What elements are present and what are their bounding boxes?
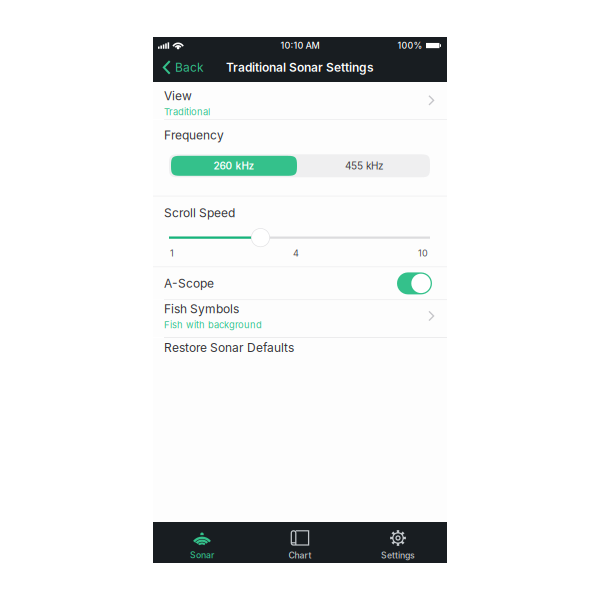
button[interactable]: View	[153, 82, 447, 119]
staticText: Fish with background	[164, 319, 262, 330]
button[interactable]: Chart	[251, 522, 349, 563]
button[interactable]: Back	[153, 53, 210, 81]
staticText: Sonar	[190, 550, 214, 560]
staticText: Frequency	[164, 128, 224, 142]
staticText: View	[164, 89, 192, 103]
staticText: 260 kHz	[213, 160, 254, 172]
staticText: Scroll Speed	[164, 206, 235, 220]
button[interactable]: 260 kHz	[169, 154, 299, 177]
staticText: Settings	[381, 550, 415, 560]
button[interactable]: Restore Sonar Defaults	[153, 338, 447, 370]
staticText: 455 kHz	[345, 160, 384, 172]
staticText: Traditional Sonar Settings	[226, 60, 374, 75]
button[interactable]: Settings	[349, 522, 447, 563]
staticText: Chart	[288, 550, 311, 560]
button[interactable]: 455 kHz	[299, 154, 430, 177]
staticText: Fish Symbols	[164, 302, 239, 316]
staticText: A-Scope	[164, 276, 214, 291]
staticText: 100%	[397, 40, 422, 51]
staticText: Back	[175, 60, 204, 75]
staticText: Traditional	[164, 106, 210, 117]
button[interactable]: Fish Symbols	[153, 300, 447, 337]
button[interactable]: A-Scope	[153, 267, 447, 299]
staticText: 4	[293, 248, 299, 259]
staticText: Restore Sonar Defaults	[164, 340, 294, 355]
staticText: 1	[170, 248, 174, 259]
button[interactable]: Sonar	[153, 522, 251, 563]
staticText: 10:10 AM	[280, 40, 319, 51]
staticText: 10	[418, 248, 428, 259]
